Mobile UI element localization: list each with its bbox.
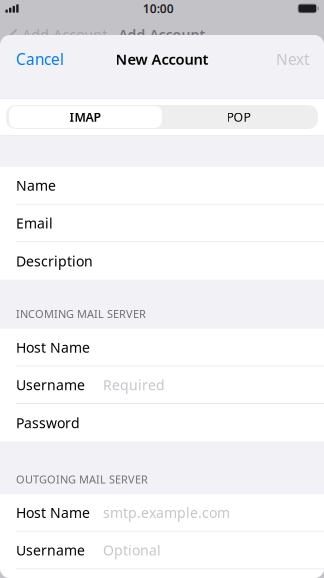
staticText: Next: [276, 49, 310, 69]
staticText: Host Name: [16, 338, 90, 357]
staticText: Host Name: [16, 503, 90, 522]
button[interactable]: IMAP: [9, 106, 162, 128]
button[interactable]: Next: [264, 37, 324, 81]
button[interactable]: Name: [0, 167, 324, 205]
button[interactable]: Cancel: [0, 37, 76, 81]
staticText: Password: [16, 413, 80, 432]
button[interactable]: Host Name: [0, 329, 324, 366]
staticText: Required: [103, 375, 165, 394]
button[interactable]: Description: [0, 242, 324, 280]
staticText: Optional: [103, 541, 161, 560]
staticText: New Account: [115, 49, 208, 69]
button[interactable]: Username: [0, 532, 324, 569]
staticText: smtp.example.com: [103, 503, 230, 522]
staticText: Add Account: [118, 25, 205, 44]
button[interactable]: Host Name: [0, 494, 324, 532]
staticText: Cancel: [16, 49, 64, 69]
staticText: 10:00: [143, 0, 174, 17]
staticText: Email: [16, 213, 53, 233]
button[interactable]: Username: [0, 366, 324, 404]
staticText: Description: [16, 251, 93, 271]
staticText: Add Account: [22, 25, 107, 44]
staticText: Username: [16, 541, 85, 560]
button[interactable]: Email: [0, 205, 324, 242]
button[interactable]: Password: [0, 404, 324, 442]
staticText: IMAP: [69, 109, 101, 125]
button[interactable]: Password: [0, 569, 324, 578]
staticText: OUTGOING MAIL SERVER: [16, 472, 148, 487]
staticText: Name: [16, 176, 56, 195]
staticText: POP: [226, 109, 250, 125]
staticText: INCOMING MAIL SERVER: [16, 306, 146, 321]
staticText: Username: [16, 375, 85, 394]
button[interactable]: POP: [162, 106, 315, 128]
